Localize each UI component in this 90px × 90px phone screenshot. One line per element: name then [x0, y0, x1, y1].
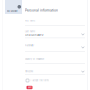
staticText: Country of residence — [25, 58, 44, 60]
staticText: First name — [25, 20, 35, 22]
staticText: Personal information — [25, 8, 58, 12]
button[interactable]: Save — [26, 86, 32, 89]
staticText: I accept the terms — [30, 79, 49, 82]
staticText: Timezone — [25, 70, 33, 73]
staticText: Save — [27, 86, 31, 89]
staticText: Last name — [25, 30, 35, 33]
staticText: Ana Gonzalez — [6, 10, 17, 12]
button[interactable]: I accept the terms — [26, 79, 49, 82]
staticText: Nationality — [25, 44, 34, 47]
staticText: Ana Gonzalez — [25, 33, 43, 37]
